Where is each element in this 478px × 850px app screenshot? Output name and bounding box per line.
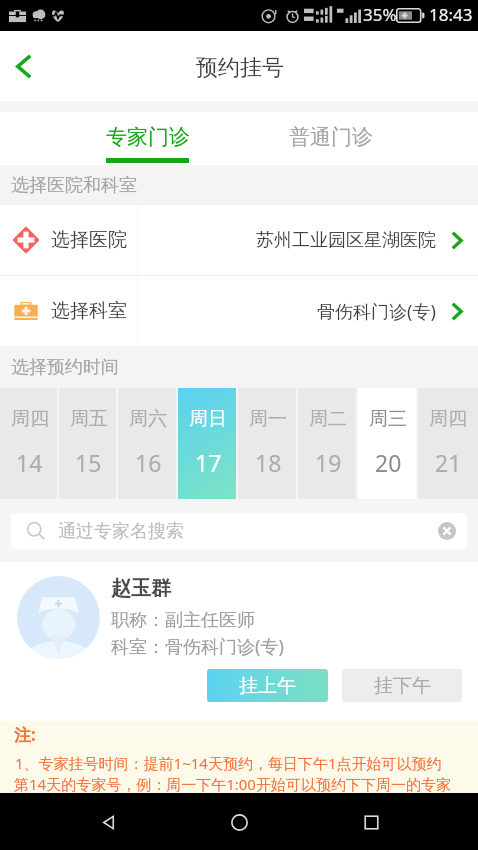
staticText: 选择医院和科室 xyxy=(11,174,137,197)
staticText: 职称：副主任医师 xyxy=(111,609,255,632)
staticText: 苏州工业园区星湖医院 xyxy=(256,229,436,252)
staticText: 16 xyxy=(135,447,162,478)
staticText: 周一 xyxy=(249,407,287,431)
button[interactable]: Recents xyxy=(347,798,395,846)
staticText: 周日 xyxy=(189,407,227,431)
staticText: 骨伤科门诊(专) xyxy=(317,299,436,324)
button[interactable]: 普通门诊 xyxy=(239,112,422,165)
staticText: 选择预约时间 xyxy=(11,356,119,379)
staticText: 周四 xyxy=(11,407,49,431)
staticText: 科室：骨伤科门诊(专) xyxy=(111,634,284,659)
button[interactable]: 挂上午 xyxy=(207,669,328,702)
staticText: 17 xyxy=(195,447,222,478)
staticText: 第14天的专家号，例：周一下午1:00开始可以预约下下周一的专家 xyxy=(14,774,451,794)
button[interactable]: 周三 xyxy=(358,388,418,499)
staticText: 周三 xyxy=(369,407,407,431)
staticText: 挂上午 xyxy=(239,674,296,698)
button[interactable]: Back xyxy=(84,798,132,846)
button[interactable]: 周日 xyxy=(178,388,238,499)
button[interactable]: 选择医院 xyxy=(0,205,478,275)
button[interactable]: Back xyxy=(1,43,47,89)
button[interactable]: Home xyxy=(215,798,263,846)
button[interactable]: 选择科室 xyxy=(0,276,478,346)
staticText: 普通门诊 xyxy=(289,124,373,150)
button[interactable]: 周六 xyxy=(118,388,178,499)
staticText: 通过专家名搜索 xyxy=(58,520,184,543)
staticText: 预约挂号 xyxy=(196,54,284,82)
button[interactable]: 专家门诊 xyxy=(56,112,239,165)
staticText: 周四 xyxy=(429,407,467,431)
staticText: 21 xyxy=(435,447,462,478)
button[interactable]: 周一 xyxy=(238,388,298,499)
staticText: 35% xyxy=(363,3,397,26)
staticText: 1、专家挂号时间：提前1~14天预约，每日下午1点开始可以预约 xyxy=(15,753,442,773)
staticText: 19 xyxy=(315,447,342,478)
button[interactable]: 周四 xyxy=(0,388,59,499)
staticText: 赵玉群 xyxy=(111,576,171,601)
staticText: 周二 xyxy=(309,407,347,431)
button[interactable]: 挂下午 xyxy=(342,669,462,702)
staticText: 专家门诊 xyxy=(106,124,190,150)
staticText: 周六 xyxy=(129,407,167,431)
staticText: 18 xyxy=(255,447,282,478)
staticText: 选择医院 xyxy=(51,228,127,252)
staticText: 注: xyxy=(14,723,36,746)
button[interactable]: 周四 xyxy=(418,388,478,499)
button[interactable]: Clear xyxy=(431,515,463,547)
button[interactable]: 周五 xyxy=(59,388,118,499)
staticText: 18:43 xyxy=(429,3,473,26)
staticText: 14 xyxy=(16,447,43,478)
staticText: 周五 xyxy=(70,407,108,431)
button[interactable]: 通过专家名搜索 xyxy=(11,513,467,549)
staticText: 挂下午 xyxy=(374,674,431,698)
staticText: 选择科室 xyxy=(51,299,127,323)
staticText: 15 xyxy=(75,447,102,478)
button[interactable]: 周二 xyxy=(298,388,358,499)
staticText: 20 xyxy=(375,447,402,478)
